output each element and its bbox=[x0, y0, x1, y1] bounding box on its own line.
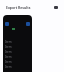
button[interactable]: Item bbox=[5, 54, 30, 59]
staticText: Item bbox=[5, 55, 12, 59]
staticText: Item bbox=[5, 60, 12, 64]
button[interactable]: Chart 2 bbox=[26, 22, 30, 26]
button[interactable]: Item bbox=[5, 59, 30, 64]
button[interactable]: Item bbox=[5, 49, 30, 54]
button[interactable]: Item bbox=[5, 39, 30, 44]
staticText: Item bbox=[5, 45, 12, 49]
button[interactable]: Item bbox=[5, 64, 30, 69]
button[interactable]: Share bbox=[54, 6, 58, 9]
staticText: Item bbox=[5, 50, 12, 54]
staticText: Export Results bbox=[6, 5, 54, 10]
staticText: Item bbox=[5, 65, 12, 69]
button[interactable]: Item bbox=[5, 44, 30, 49]
button[interactable]: Chart bbox=[5, 22, 9, 26]
staticText: Item bbox=[5, 40, 12, 44]
